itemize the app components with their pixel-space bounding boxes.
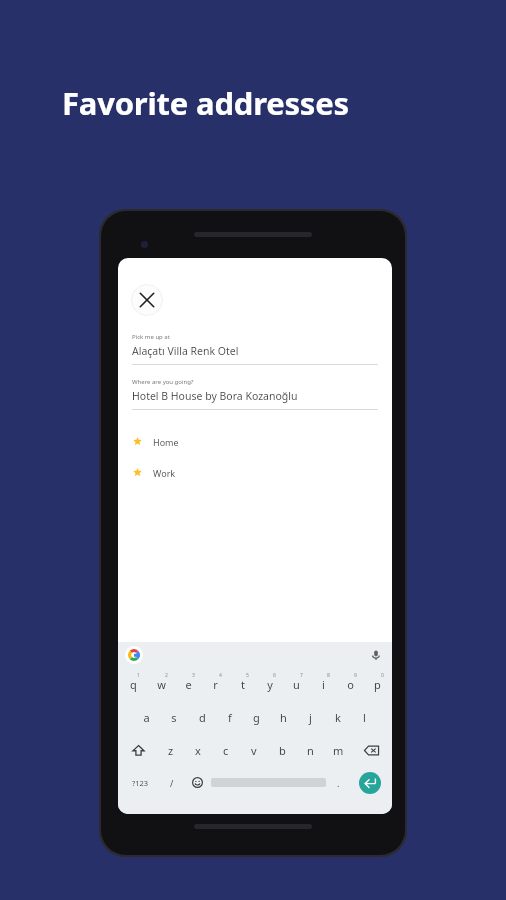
staticText: 4 bbox=[219, 672, 222, 679]
button[interactable]: x bbox=[184, 734, 212, 767]
staticText: 1 bbox=[137, 672, 140, 679]
staticText: / bbox=[170, 777, 174, 789]
staticText: Pick me up at bbox=[132, 333, 170, 341]
staticText: . bbox=[337, 777, 340, 789]
staticText: a bbox=[143, 710, 150, 725]
staticText: Alaçatı Villa Renk Otel bbox=[132, 344, 239, 358]
button[interactable]: a bbox=[132, 701, 160, 734]
staticText: v bbox=[251, 743, 257, 758]
staticText: h bbox=[280, 710, 287, 725]
staticText: 9 bbox=[354, 672, 357, 679]
staticText: z bbox=[168, 743, 174, 758]
button[interactable]: Work bbox=[118, 457, 392, 488]
staticText: k bbox=[335, 710, 341, 725]
staticText: s bbox=[171, 710, 177, 725]
staticText: 3 bbox=[192, 672, 195, 679]
button[interactable]: w bbox=[147, 668, 175, 701]
staticText: o bbox=[347, 677, 354, 692]
staticText: m bbox=[333, 743, 344, 758]
staticText: w bbox=[157, 677, 166, 692]
button[interactable]: t bbox=[229, 668, 256, 701]
button[interactable]: h bbox=[270, 701, 297, 734]
staticText: d bbox=[199, 710, 206, 725]
button[interactable]: Home bbox=[118, 426, 392, 457]
staticText: y bbox=[267, 677, 273, 692]
button[interactable]: q bbox=[119, 668, 147, 701]
button[interactable]: z bbox=[157, 734, 184, 767]
staticText: 6 bbox=[273, 672, 276, 679]
button[interactable]: j bbox=[297, 701, 324, 734]
button[interactable]: v bbox=[240, 734, 268, 767]
button[interactable]: / bbox=[160, 767, 184, 798]
button[interactable]: ?123 bbox=[121, 767, 160, 798]
staticText: f bbox=[228, 710, 232, 725]
staticText: 0 bbox=[381, 672, 384, 679]
button[interactable]: i bbox=[310, 668, 337, 701]
button[interactable]: e bbox=[175, 668, 202, 701]
button[interactable]: Shift bbox=[120, 734, 157, 767]
staticText: j bbox=[309, 710, 312, 725]
button[interactable]: b bbox=[268, 734, 296, 767]
button[interactable]: k bbox=[324, 701, 351, 734]
staticText: Hotel B House by Bora Kozanoğlu bbox=[132, 389, 298, 403]
button[interactable]: l bbox=[351, 701, 378, 734]
staticText: Favorite addresses bbox=[62, 82, 349, 124]
staticText: 7 bbox=[300, 672, 303, 679]
button[interactable]: Enter bbox=[359, 772, 381, 794]
staticText: 2 bbox=[165, 672, 168, 679]
button[interactable]: c bbox=[212, 734, 240, 767]
staticText: x bbox=[195, 743, 201, 758]
button[interactable]: d bbox=[188, 701, 216, 734]
staticText: 8 bbox=[327, 672, 330, 679]
button[interactable]: r bbox=[202, 668, 229, 701]
staticText: ?123 bbox=[132, 778, 149, 788]
staticText: l bbox=[363, 710, 366, 725]
staticText: Work bbox=[153, 467, 176, 479]
button[interactable]: s bbox=[160, 701, 188, 734]
staticText: r bbox=[213, 677, 218, 692]
staticText: n bbox=[307, 743, 314, 758]
staticText: e bbox=[185, 677, 192, 692]
button[interactable]: g bbox=[243, 701, 270, 734]
button[interactable]: Emoji bbox=[184, 767, 211, 798]
staticText: b bbox=[279, 743, 286, 758]
staticText: t bbox=[241, 677, 245, 692]
staticText: i bbox=[322, 677, 325, 692]
button[interactable]: . bbox=[326, 767, 351, 798]
button[interactable]: p bbox=[364, 668, 391, 701]
button[interactable]: n bbox=[296, 734, 324, 767]
staticText: u bbox=[293, 677, 300, 692]
staticText: q bbox=[130, 677, 137, 692]
button[interactable]: Google bbox=[125, 646, 143, 664]
staticText: g bbox=[253, 710, 260, 725]
button[interactable]: Backspace bbox=[352, 734, 390, 767]
button[interactable]: Close bbox=[131, 284, 163, 316]
staticText: Home bbox=[153, 436, 179, 448]
button[interactable]: o bbox=[337, 668, 364, 701]
button[interactable]: y bbox=[256, 668, 283, 701]
staticText: 5 bbox=[246, 672, 249, 679]
button[interactable]: Voice input bbox=[369, 648, 383, 662]
button[interactable]: m bbox=[324, 734, 352, 767]
button[interactable]: u bbox=[283, 668, 310, 701]
button[interactable]: f bbox=[216, 701, 243, 734]
staticText: Where are you going? bbox=[132, 378, 194, 386]
staticText: p bbox=[374, 677, 381, 692]
staticText: c bbox=[223, 743, 229, 758]
